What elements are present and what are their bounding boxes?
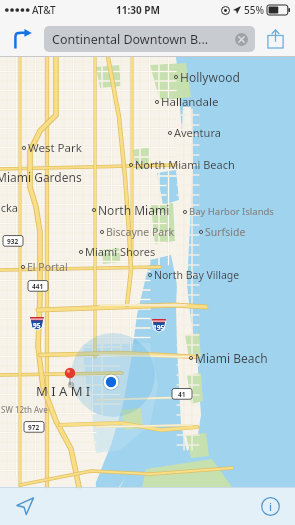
staticText: 55%	[244, 3, 264, 17]
staticText: Miami Beach	[195, 350, 268, 366]
button[interactable]: Continental Downtown B...	[44, 26, 255, 52]
staticText: Biscayne Park	[106, 225, 175, 239]
staticText: Bay Harbor Islands	[189, 205, 274, 218]
staticText: West Park	[28, 140, 82, 156]
staticText: Hallandale	[161, 94, 219, 110]
staticText: Miami Gardens	[0, 169, 82, 185]
staticText: Surfside	[205, 225, 246, 239]
staticText: ocka	[0, 200, 18, 215]
button[interactable]: Info	[254, 490, 286, 522]
button[interactable]: Share	[255, 20, 295, 57]
staticText: 11:30 PM	[116, 3, 160, 17]
button[interactable]: Current location	[9, 490, 41, 522]
staticText: Continental Downtown B...	[52, 31, 209, 48]
staticText: North Bay Village	[154, 268, 240, 282]
staticText: Miami Shores	[85, 244, 156, 259]
button[interactable]: Clear text	[235, 33, 248, 46]
staticText: Hollywood	[180, 69, 240, 85]
staticText: 441	[32, 282, 44, 291]
staticText: 195	[153, 323, 165, 332]
staticText: Aventura	[174, 125, 221, 140]
staticText: M I A M I	[36, 382, 91, 400]
staticText: North Miami	[98, 202, 170, 218]
staticText: El Portal	[27, 260, 68, 274]
staticText: SW 12th Ave	[1, 404, 48, 415]
staticText: i	[269, 499, 272, 514]
staticText: 41	[178, 390, 186, 399]
staticText: 972	[28, 423, 40, 432]
staticText: AT&T	[32, 3, 56, 17]
button[interactable]: Directions	[0, 20, 44, 57]
staticText: North Miami Beach	[135, 157, 235, 172]
staticText: 932	[7, 237, 19, 246]
staticText: 95	[33, 321, 41, 330]
